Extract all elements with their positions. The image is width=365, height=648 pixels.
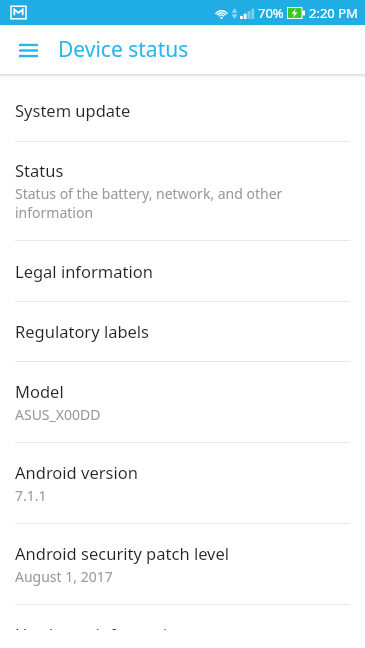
button[interactable]: Legal information [0,241,365,301]
staticText: Device status [58,35,189,64]
button[interactable]: Open navigation menu [8,30,48,70]
staticText: System update [15,99,131,121]
staticText: Regulatory labels [15,320,150,342]
staticText: Hardware information [15,623,188,630]
staticText: Legal information [15,260,153,282]
button[interactable]: Status [0,142,365,240]
button[interactable]: System update [0,78,365,141]
button[interactable]: Android security patch level [0,524,365,604]
staticText: ASUS_X00DD [15,405,101,424]
staticText: Android version [15,461,138,483]
button[interactable]: Regulatory labels [0,302,365,361]
staticText: 70% [258,4,284,22]
staticText: August 1, 2017 [15,567,113,586]
staticText: 7.1.1 [15,486,47,505]
staticText: Android security patch level [15,542,230,564]
staticText: Model [15,380,64,402]
button[interactable]: Hardware information [0,605,365,648]
button[interactable]: Model [0,362,365,442]
staticText: Status [15,159,64,181]
staticText: 2:20 PM [309,4,358,22]
button[interactable]: Android version [0,443,365,523]
staticText: Status of the battery, network, and othe… [15,184,283,222]
